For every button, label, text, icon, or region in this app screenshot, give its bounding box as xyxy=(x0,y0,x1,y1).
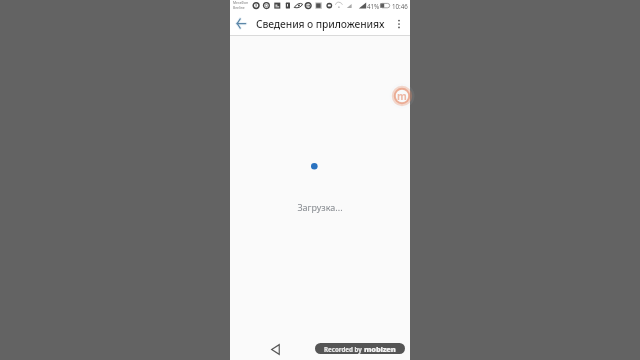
staticText: Загрузка... xyxy=(297,201,343,213)
staticText: 10:46 xyxy=(392,2,408,10)
staticText: Beeline xyxy=(233,5,245,10)
button[interactable]: Назад xyxy=(230,12,252,35)
staticText: Сведения о приложениях xyxy=(256,17,385,31)
staticText: Recorded by xyxy=(324,345,362,353)
staticText: mobizen xyxy=(364,344,396,354)
button[interactable]: Mobizen xyxy=(387,81,417,111)
button[interactable]: Назад xyxy=(267,341,283,357)
staticText: 41% xyxy=(367,2,380,10)
button[interactable]: Ещё xyxy=(390,12,408,35)
staticText: m xyxy=(397,89,407,103)
staticText: МегаФон xyxy=(233,0,249,5)
